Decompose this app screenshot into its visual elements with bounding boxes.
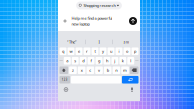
staticText: s <box>74 58 76 63</box>
button[interactable]: m <box>121 66 129 74</box>
button[interactable]: Send <box>129 17 137 25</box>
button[interactable]: Add attachment <box>61 17 69 25</box>
staticText: i <box>118 49 119 54</box>
button[interactable]: r <box>83 47 90 55</box>
button[interactable]: z <box>69 66 77 74</box>
staticText: u <box>110 49 112 54</box>
button[interactable]: Shopping research <box>76 1 122 9</box>
staticText: t <box>94 49 95 54</box>
button[interactable]: f <box>88 57 94 65</box>
button[interactable]: s <box>72 57 79 65</box>
staticText: j <box>114 58 115 63</box>
staticText: p <box>134 49 136 54</box>
staticText: Help me find a powerful <box>71 15 112 21</box>
staticText: 123 <box>62 78 68 81</box>
button[interactable]: q <box>59 47 66 55</box>
staticText: g <box>98 58 100 63</box>
button[interactable]: g <box>95 57 102 65</box>
staticText: k <box>122 58 124 63</box>
button[interactable]: u <box>107 47 114 55</box>
staticText: y <box>102 49 104 54</box>
button[interactable]: Return <box>122 76 138 84</box>
button[interactable]: Shift <box>59 66 68 74</box>
button[interactable]: b <box>104 66 111 74</box>
button[interactable]: “The” <box>58 36 85 47</box>
button[interactable]: e <box>75 47 82 55</box>
staticText: b <box>107 68 109 73</box>
button[interactable]: x <box>78 66 85 74</box>
staticText: v <box>98 68 100 73</box>
staticText: d <box>82 58 84 63</box>
button[interactable]: I’m <box>113 36 140 47</box>
staticText: c <box>89 68 91 73</box>
button[interactable]: Dictation <box>129 86 135 92</box>
staticText: new laptop <box>71 21 89 26</box>
staticText: w <box>69 49 72 54</box>
staticText: x <box>81 68 83 73</box>
button[interactable]: c <box>86 66 94 74</box>
button[interactable]: j <box>111 57 118 65</box>
button[interactable]: i <box>115 47 122 55</box>
staticText: m <box>123 68 127 73</box>
button[interactable]: Emoji keyboard <box>63 86 69 92</box>
button[interactable]: v <box>95 66 103 74</box>
button[interactable]: Delete <box>130 66 138 74</box>
button[interactable]: a <box>64 57 71 65</box>
staticText: z <box>72 68 74 73</box>
staticText: n <box>115 68 117 73</box>
button[interactable]: n <box>112 66 120 74</box>
button[interactable]: Space <box>71 76 121 84</box>
button[interactable]: p <box>131 47 138 55</box>
button[interactable]: I <box>85 36 113 47</box>
staticText: Shopping research <box>83 3 115 8</box>
staticText: “The” <box>67 39 76 45</box>
staticText: h <box>106 58 108 63</box>
staticText: r <box>86 49 88 54</box>
button[interactable]: o <box>123 47 130 55</box>
staticText: f <box>91 58 92 63</box>
button[interactable]: 123 <box>59 76 70 84</box>
button[interactable]: w <box>67 47 74 55</box>
staticText: I <box>98 39 99 45</box>
staticText: o <box>126 49 128 54</box>
staticText: a <box>66 58 68 63</box>
staticText: l <box>130 58 131 63</box>
button[interactable]: h <box>103 57 110 65</box>
button[interactable]: d <box>80 57 87 65</box>
staticText: e <box>78 49 80 54</box>
button[interactable]: y <box>99 47 106 55</box>
button[interactable]: k <box>119 57 126 65</box>
staticText: q <box>62 49 64 54</box>
button[interactable]: t <box>91 47 98 55</box>
button[interactable]: l <box>127 57 134 65</box>
staticText: I’m <box>123 39 129 45</box>
